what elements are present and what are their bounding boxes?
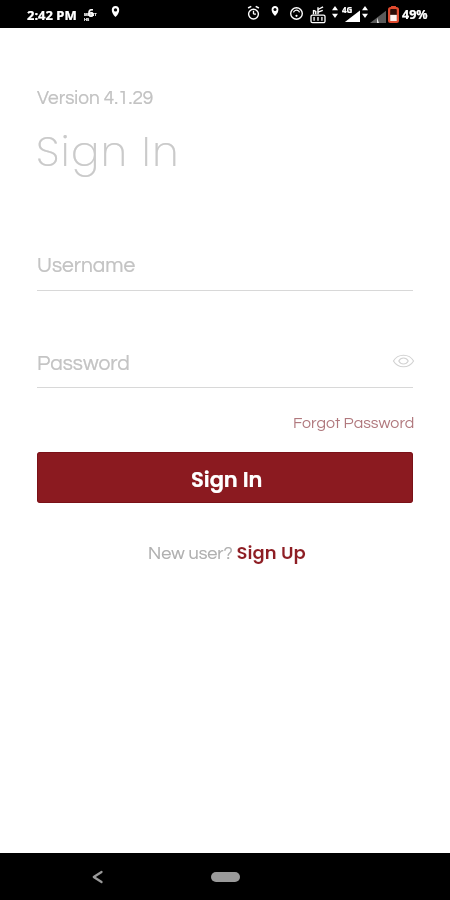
button[interactable]: Back bbox=[77, 857, 117, 897]
staticText: Sign In bbox=[36, 122, 180, 181]
staticText: Password bbox=[37, 353, 130, 375]
staticText: MONTHS bbox=[84, 12, 98, 22]
staticText: Version 4.1.29 bbox=[37, 88, 154, 108]
staticText: Username bbox=[37, 255, 136, 277]
staticText: 4G bbox=[342, 4, 353, 15]
staticText: 49% bbox=[402, 6, 428, 23]
button[interactable]: Forgot Password bbox=[290, 411, 415, 435]
staticText: Sign In bbox=[191, 465, 263, 494]
staticText: 2:42 PM bbox=[27, 6, 77, 24]
button[interactable]: Sign In bbox=[37, 452, 413, 503]
button[interactable]: New user? Sign Up bbox=[2, 537, 450, 567]
staticText: 6 bbox=[88, 6, 94, 20]
button[interactable]: Show password bbox=[391, 348, 416, 373]
staticText: Forgot Password bbox=[293, 415, 415, 431]
button[interactable]: Home bbox=[195, 863, 255, 891]
staticText: New user? Sign Up bbox=[148, 540, 306, 565]
